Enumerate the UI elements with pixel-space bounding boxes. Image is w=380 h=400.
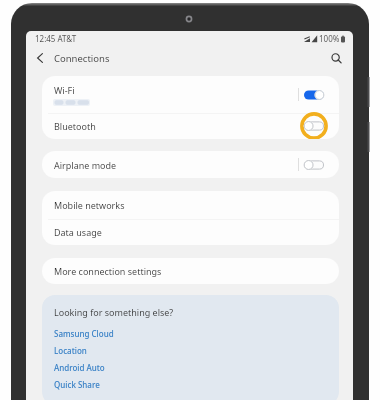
button[interactable]: Navigate up: [29, 47, 51, 69]
button[interactable]: Bluetooth: [42, 113, 339, 139]
button[interactable]: Quick Share: [54, 376, 327, 393]
staticText: Samsung Cloud: [54, 328, 114, 339]
staticText: Data usage: [54, 226, 102, 238]
staticText: 12:45 AT&T: [35, 33, 77, 44]
button[interactable]: Airplane mode: [42, 151, 339, 178]
staticText: Android Auto: [54, 362, 105, 373]
button[interactable]: Data usage: [42, 219, 339, 245]
button[interactable]: Bluetooth: [304, 119, 324, 133]
button[interactable]: Wi-Fi: [304, 88, 324, 102]
staticText: Connections: [54, 52, 110, 65]
button[interactable]: More connection settings: [42, 258, 339, 284]
button[interactable]: Location: [54, 342, 327, 359]
staticText: More connection settings: [54, 265, 162, 277]
staticText: Bluetooth: [54, 120, 96, 132]
button[interactable]: Wi-Fi: [42, 76, 339, 113]
staticText: Wi-Fi: [54, 84, 75, 96]
button[interactable]: Mobile networks: [42, 191, 339, 219]
staticText: Mobile networks: [54, 199, 125, 211]
button[interactable]: Search: [325, 47, 347, 69]
staticText: Quick Share: [54, 379, 100, 390]
button[interactable]: Samsung Cloud: [54, 325, 327, 342]
button[interactable]: Airplane mode: [304, 158, 324, 172]
button[interactable]: Android Auto: [54, 359, 327, 376]
staticText: Location: [54, 345, 87, 356]
staticText: Looking for something else?: [54, 306, 174, 318]
staticText: Airplane mode: [54, 159, 117, 171]
staticText: 100%: [319, 33, 340, 44]
